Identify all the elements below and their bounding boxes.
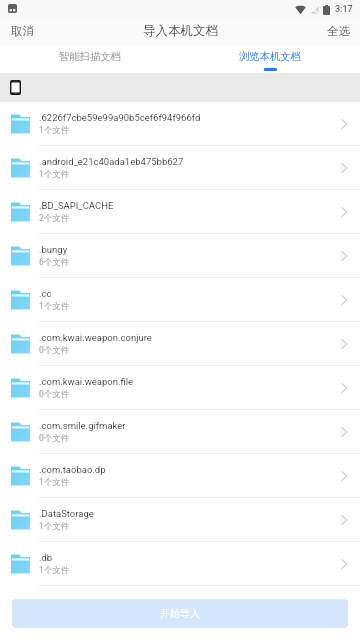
button[interactable]: 全选 (317, 18, 360, 46)
staticText: .db (39, 552, 53, 563)
button[interactable]: .DataStorage (0, 498, 360, 542)
button[interactable]: .com.kwai.weapon.conjure (0, 322, 360, 366)
staticText: 0个文件 (39, 389, 70, 400)
staticText: .BD_SAPI_CACHE (39, 200, 114, 211)
staticText: 0个文件 (39, 345, 70, 356)
staticText: .com.kwai.weapon.file (39, 376, 134, 387)
button[interactable]: Internal storage (0, 73, 360, 102)
staticText: .bungy (39, 244, 68, 255)
staticText: 2个文件 (39, 213, 70, 224)
button[interactable]: .6226f7cbe59e99a90b5cef6f94f966fd (0, 102, 360, 146)
staticText: 1个文件 (39, 169, 70, 180)
button[interactable]: .BD_SAPI_CACHE (0, 190, 360, 234)
button[interactable]: .com.smile.gifmaker (0, 410, 360, 454)
staticText: 1个文件 (39, 301, 70, 312)
staticText: 智能扫描文档 (59, 50, 121, 63)
staticText: 1个文件 (39, 125, 70, 136)
button[interactable]: .android_e21c40ada1eb475bb627 (0, 146, 360, 190)
staticText: 0个文件 (39, 433, 70, 444)
staticText: 1个文件 (39, 477, 70, 488)
button[interactable]: 开始导入 (12, 599, 348, 628)
button[interactable]: .cc (0, 278, 360, 322)
staticText: 开始导入 (160, 607, 200, 620)
staticText: .com.taobao.dp (39, 464, 106, 475)
button[interactable]: .com.taobao.dp (0, 454, 360, 498)
button[interactable]: 取消 (0, 18, 45, 46)
staticText: .com.smile.gifmaker (39, 420, 126, 431)
other: Internal storage (10, 80, 21, 95)
staticText: 全选 (327, 24, 350, 38)
button[interactable]: .db (0, 542, 360, 586)
button[interactable]: 浏览本机文档 (180, 46, 360, 73)
staticText: .cc (39, 288, 52, 299)
button[interactable]: .com.kwai.weapon.file (0, 366, 360, 410)
staticText: .DataStorage (39, 508, 94, 519)
staticText: 6个文件 (39, 257, 70, 268)
staticText: 3:17 (335, 4, 353, 15)
staticText: .6226f7cbe59e99a90b5cef6f94f966fd (39, 112, 201, 123)
staticText: 取消 (11, 24, 34, 38)
staticText: 1个文件 (39, 521, 70, 532)
button[interactable]: .bungy (0, 234, 360, 278)
staticText: 导入本机文档 (143, 23, 218, 39)
staticText: 1个文件 (39, 565, 70, 576)
staticText: 浏览本机文档 (239, 50, 301, 63)
staticText: .com.kwai.weapon.conjure (39, 332, 152, 343)
staticText: .android_e21c40ada1eb475bb627 (39, 156, 184, 167)
button[interactable]: 智能扫描文档 (0, 46, 180, 73)
